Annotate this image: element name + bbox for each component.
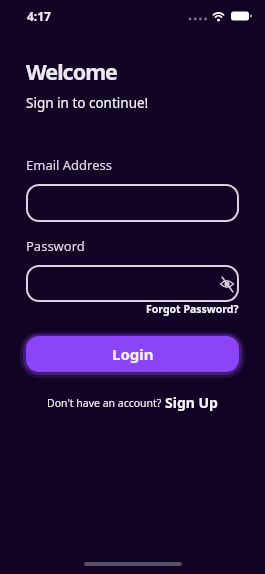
button[interactable] xyxy=(26,265,239,302)
staticText: Don't have an account? xyxy=(47,396,165,410)
button[interactable]: Forgot Password? xyxy=(146,302,239,316)
staticText: Email Address xyxy=(26,156,112,174)
staticText: Welcome xyxy=(26,57,117,86)
button[interactable] xyxy=(26,184,239,222)
staticText: 4:17 xyxy=(27,8,51,24)
button[interactable]: Login xyxy=(26,336,239,372)
staticText: Password xyxy=(26,237,85,255)
staticText: Login xyxy=(112,344,154,364)
staticText: Sign Up xyxy=(165,393,218,412)
button[interactable]: Sign Up xyxy=(165,393,218,412)
staticText: Forgot Password? xyxy=(146,302,239,316)
staticText: Sign in to continue! xyxy=(26,94,149,112)
